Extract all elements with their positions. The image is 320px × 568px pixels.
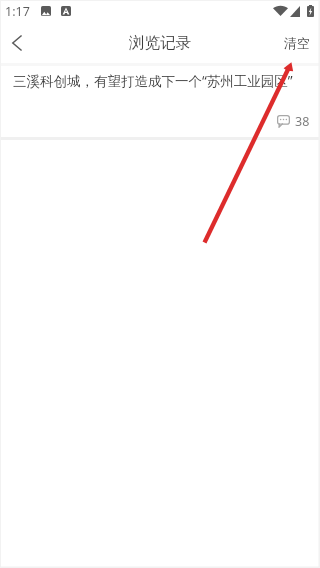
staticText: 1:17: [5, 3, 30, 20]
button[interactable]: 三溪科创城，有望打造成下一个“苏州工业园区”: [0, 66, 320, 137]
button[interactable]: 清空: [270, 22, 320, 63]
staticText: 浏览记录: [129, 33, 191, 53]
staticText: 清空: [284, 35, 310, 51]
staticText: 三溪科创城，有望打造成下一个“苏州工业园区”: [13, 72, 293, 90]
button[interactable]: Back: [0, 22, 33, 63]
staticText: 38: [295, 113, 310, 130]
